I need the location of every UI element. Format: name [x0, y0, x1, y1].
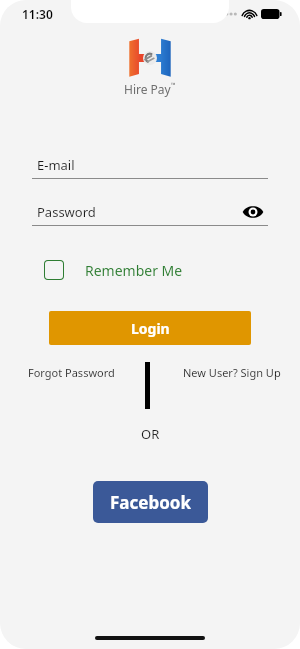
staticText: Password — [37, 203, 96, 221]
staticText: 11:30 — [22, 6, 53, 22]
staticText: OR — [141, 425, 160, 443]
button[interactable]: Remember Me — [42, 256, 185, 284]
button[interactable]: Forgot Password — [26, 363, 117, 382]
staticText: Facebook — [110, 491, 191, 514]
staticText: Login — [131, 319, 170, 338]
staticText: ™ — [171, 81, 176, 89]
button[interactable]: New User? Sign Up — [181, 363, 283, 382]
staticText: E-mail — [37, 156, 75, 174]
staticText: Hire Pay — [124, 81, 171, 97]
button[interactable]: E-mail — [32, 154, 268, 176]
button[interactable]: Facebook — [93, 481, 208, 523]
button[interactable]: Show password — [238, 201, 268, 223]
button[interactable]: Password — [32, 201, 268, 223]
staticText: Remember Me — [85, 261, 183, 280]
button[interactable]: Login — [49, 311, 251, 345]
